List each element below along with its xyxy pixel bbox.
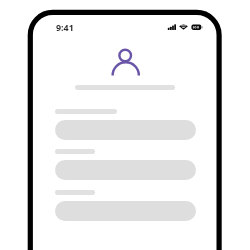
button[interactable]: Profile xyxy=(109,44,143,76)
other: Signal, Wi-Fi and battery status xyxy=(166,22,206,34)
button[interactable]: List item 3 xyxy=(55,190,196,220)
staticText: 9:41 xyxy=(56,21,74,33)
button[interactable]: List item 2 xyxy=(55,149,196,180)
button[interactable]: List item 1 xyxy=(55,109,196,140)
